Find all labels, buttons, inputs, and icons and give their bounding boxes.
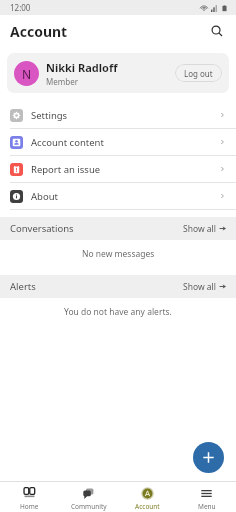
staticText: Member [46, 76, 78, 87]
staticText: Menu [198, 502, 216, 511]
staticText: Report an issue [31, 163, 218, 176]
button[interactable]: Community [59, 484, 118, 511]
button[interactable]: Alerts [0, 275, 236, 298]
button[interactable]: Report an issue [0, 156, 236, 182]
button[interactable]: Account content [0, 129, 236, 155]
staticText: You do not have any alerts. [64, 306, 172, 318]
staticText: Nikki Radloff [46, 60, 118, 75]
staticText: Settings [31, 109, 218, 122]
staticText: Show all [183, 281, 216, 293]
staticText: No new messages [82, 248, 155, 260]
staticText: Show all [183, 223, 216, 235]
staticText: About [31, 190, 218, 203]
staticText: Account [135, 502, 160, 511]
staticText: Alerts [10, 280, 183, 293]
staticText: 12:00 [10, 2, 31, 13]
button[interactable]: Settings [0, 102, 236, 128]
staticText: Account [10, 22, 68, 41]
button[interactable]: N [7, 53, 229, 93]
button[interactable]: Home [0, 484, 59, 511]
button[interactable]: Menu [177, 484, 236, 511]
staticText: Account content [31, 136, 218, 149]
button[interactable]: Create new [193, 442, 224, 473]
button[interactable]: Conversations [0, 217, 236, 240]
staticText: N [22, 66, 32, 82]
staticText: Home [20, 502, 39, 511]
button[interactable]: Account [118, 484, 177, 511]
button[interactable]: Log out [175, 64, 222, 82]
staticText: Conversations [10, 222, 183, 235]
button[interactable]: Search [204, 18, 230, 44]
staticText: Log out [184, 68, 213, 79]
button[interactable]: About [0, 183, 236, 209]
staticText: Community [71, 502, 107, 511]
